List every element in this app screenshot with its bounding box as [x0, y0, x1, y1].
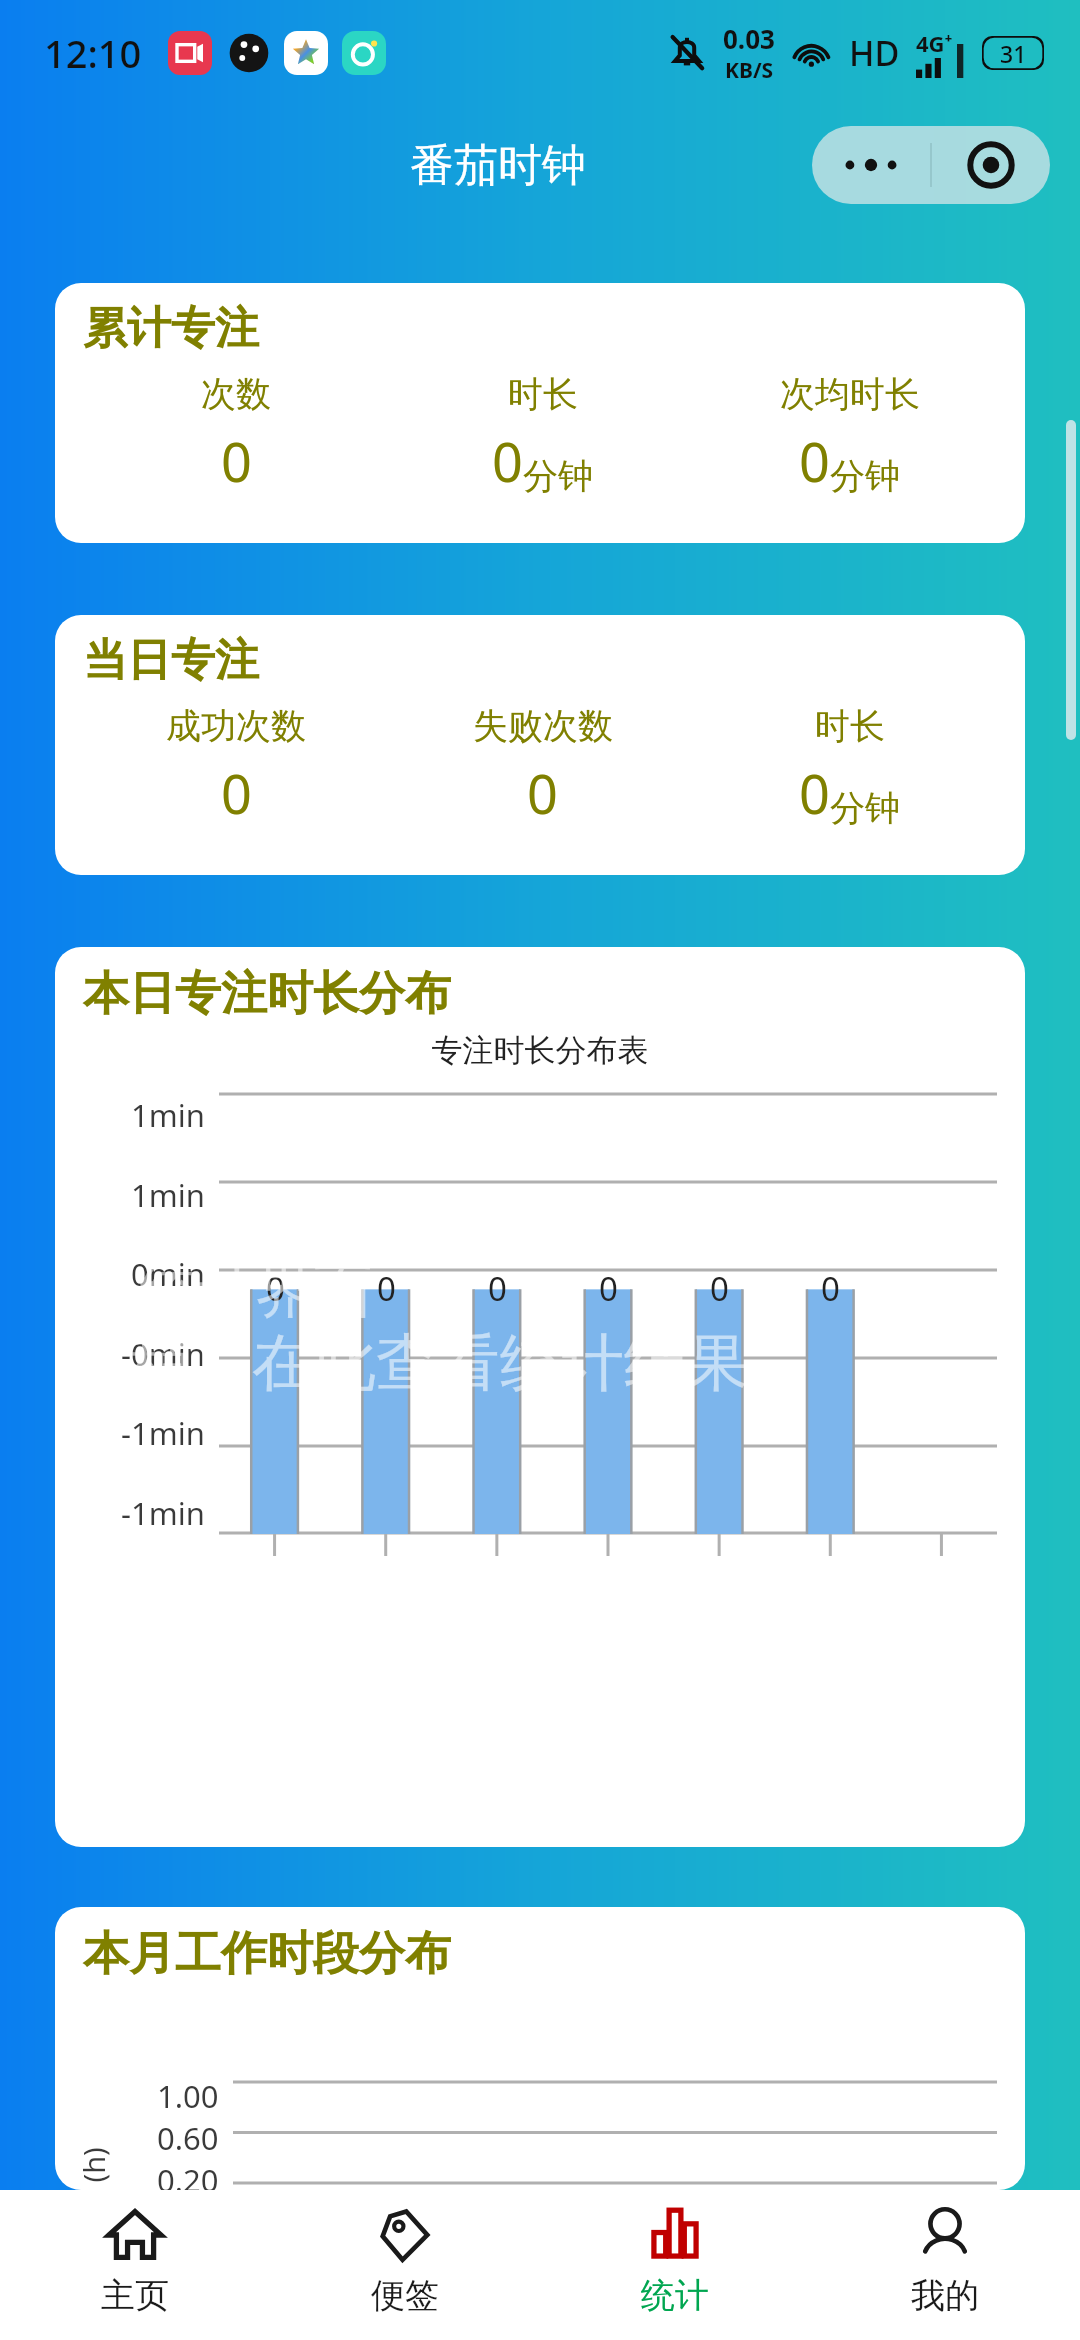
staticText: 我的 [911, 2274, 979, 2317]
staticText: 主页 [101, 2274, 169, 2317]
staticText: (h) [73, 2146, 112, 2182]
staticText: 0 [221, 756, 252, 830]
button[interactable]: 主页 [0, 2190, 270, 2340]
staticText: 0 [821, 1266, 840, 1311]
staticText: 0 [221, 424, 252, 498]
staticText: 0.20 [157, 2159, 219, 2190]
staticText: 0 [799, 424, 830, 498]
staticText: 31 [1000, 38, 1027, 69]
staticText: 0.03 [723, 21, 775, 56]
button[interactable]: 便签 [270, 2190, 540, 2340]
staticText: 当日专注 [83, 633, 259, 688]
staticText: -0min [121, 1333, 205, 1375]
staticText: 次均时长 [780, 372, 920, 416]
button[interactable]: 菜单 [812, 126, 1050, 204]
staticText: 4G⁺ [916, 28, 953, 58]
button[interactable]: 本日专注时长分布 [55, 947, 1025, 1847]
button[interactable]: 我的 [810, 2190, 1080, 2340]
staticText: 0min [131, 1253, 205, 1295]
button[interactable]: 当日专注 [55, 615, 1025, 875]
staticText: KB/S [725, 56, 774, 85]
staticText: 1min [131, 1094, 205, 1136]
staticText: 成功次数 [166, 704, 306, 748]
staticText: 0 [527, 756, 558, 830]
staticText: 本月工作时段分布 [83, 1925, 451, 1983]
staticText: 0 [799, 756, 830, 830]
staticText: 1min [131, 1174, 205, 1216]
staticText: 次数 [201, 372, 271, 416]
staticText: 专注时长分布表 [55, 1031, 1025, 1070]
button[interactable]: 统计 [540, 2190, 810, 2340]
staticText: 0 [599, 1266, 618, 1311]
staticText: 统计 [641, 2274, 709, 2317]
staticText: 0 [710, 1266, 729, 1311]
staticText: HD [849, 30, 900, 76]
button[interactable]: 本月工作时段分布 [55, 1907, 1025, 2190]
button[interactable]: 累计专注 [55, 283, 1025, 543]
staticText: 0 [266, 1266, 285, 1311]
staticText: 失败次数 [473, 704, 613, 748]
staticText: 累计专注 [83, 301, 259, 356]
staticText: 分钟 [830, 786, 900, 830]
staticText: 时长 [508, 372, 578, 416]
staticText: 12:10 [44, 27, 142, 79]
staticText: 0 [377, 1266, 396, 1311]
staticText: 稍后在此查看统计结果 [128, 1324, 748, 1402]
staticText: -1min [121, 1492, 205, 1534]
staticText: 番茄时钟 [410, 138, 586, 193]
staticText: 0.60 [157, 2117, 219, 2159]
staticText: -1min [121, 1412, 205, 1454]
staticText: 便签 [371, 2274, 439, 2317]
staticText: 0 [492, 424, 523, 498]
staticText: 0 [488, 1266, 507, 1311]
staticText: 分钟 [830, 454, 900, 498]
staticText: 统计界面 [140, 1255, 372, 1328]
staticText: 1.00 [157, 2075, 219, 2117]
staticText: 分钟 [523, 454, 593, 498]
staticText: 时长 [815, 704, 885, 748]
staticText: 本日专注时长分布 [83, 965, 451, 1023]
